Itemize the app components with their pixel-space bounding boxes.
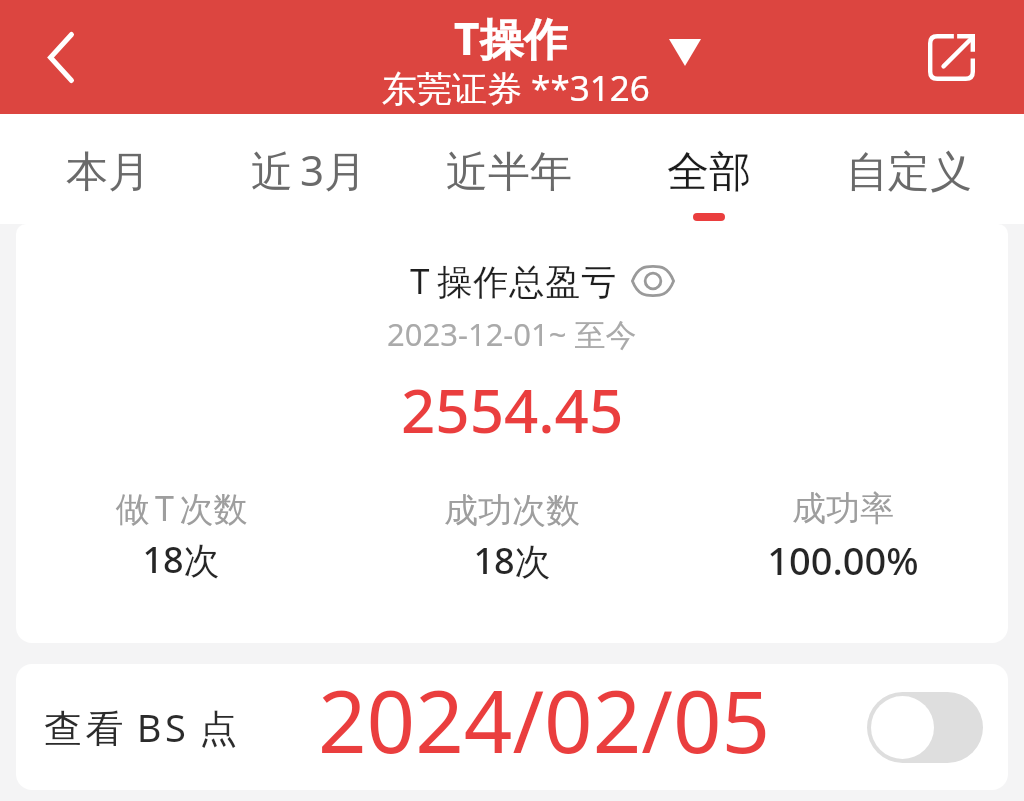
staticText: 2024/02/05 (318, 664, 771, 778)
button[interactable]: 本月 (7, 114, 208, 224)
button[interactable]: Switch account (645, 12, 725, 92)
staticText: T 操作总盈亏 (410, 257, 618, 305)
staticText: 近 3月 (251, 141, 366, 198)
button[interactable]: 全部 (609, 114, 809, 224)
staticText: 成功次数 (444, 489, 580, 532)
staticText: 2023-12-01~ 至今 (387, 313, 637, 355)
button[interactable]: Toggle amount visibility (630, 262, 676, 300)
staticText: 做 T 次数 (115, 485, 248, 531)
button[interactable]: Back (5, 0, 117, 114)
staticText: T操作 (454, 8, 568, 68)
staticText: 自定义 (846, 146, 972, 199)
staticText: 近半年 (446, 146, 572, 199)
staticText: 2554.45 (401, 369, 624, 451)
staticText: 全部 (667, 146, 751, 199)
staticText: 100.00% (767, 534, 919, 586)
staticText: 东莞证券 **3126 (382, 64, 650, 112)
button[interactable]: 近 3月 (208, 114, 409, 224)
button[interactable]: 查看 BS 点 (16, 664, 1008, 790)
button[interactable]: 自定义 (809, 114, 1009, 224)
staticText: 18次 (142, 535, 220, 584)
button[interactable]: Toggle BS points (867, 692, 983, 763)
button[interactable]: T 操作总盈亏 (410, 257, 676, 305)
staticText: 查看 BS 点 (44, 701, 241, 753)
staticText: 成功率 (792, 487, 894, 530)
staticText: 本月 (66, 146, 150, 199)
staticText: 18次 (473, 536, 551, 585)
button[interactable]: 近半年 (409, 114, 609, 224)
button[interactable]: Share (896, 0, 1006, 114)
